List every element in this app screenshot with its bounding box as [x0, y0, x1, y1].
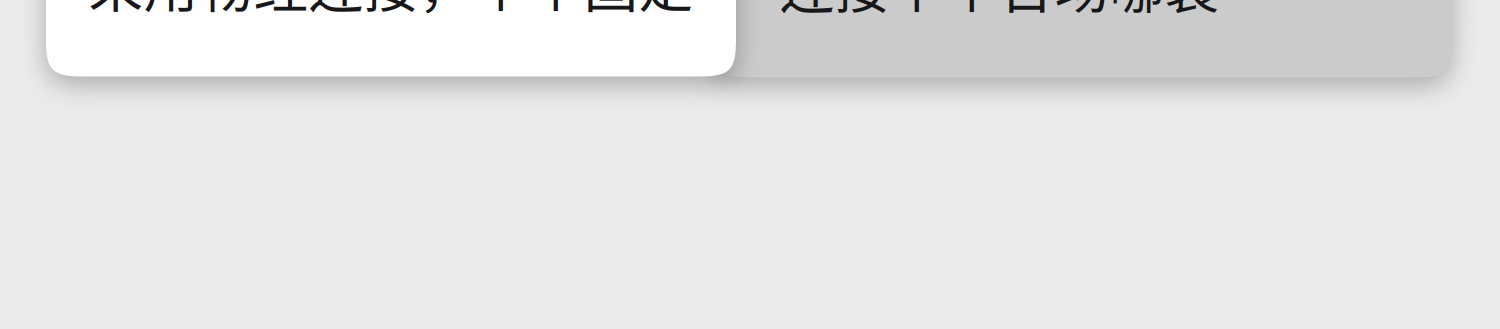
button[interactable]: 今天下午的安排已经确认 需要提前十分钟到场签到 采用物经连接，个个固定 — [46, 0, 736, 76]
button[interactable]: 记得带上相关的证明材料 现场会有工作人员引导你 连接个个台场哪装 — [712, 0, 1452, 77]
staticText: 今天下午的安排已经确认 需要提前十分钟到场签到 采用物经连接，个个固定 — [88, 0, 693, 22]
staticText: 记得带上相关的证明材料 现场会有工作人员引导你 连接个个台场哪装 — [779, 0, 1384, 23]
